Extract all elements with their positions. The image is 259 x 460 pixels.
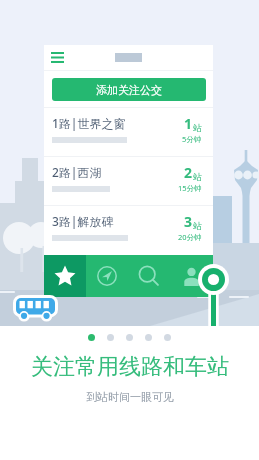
button[interactable]: Page 3 — [126, 334, 133, 341]
staticText: 15分钟 — [178, 183, 202, 193]
staticText: 关注常用线路和车站 — [31, 353, 229, 381]
staticText: 3路|解放碑 — [52, 213, 114, 229]
button[interactable]: 添加关注公交 — [52, 78, 206, 101]
staticText: 站 — [193, 220, 202, 231]
button[interactable]: Search — [128, 255, 170, 297]
button[interactable]: Page 2 — [107, 334, 114, 341]
staticText: 1路|世界之窗 — [52, 115, 126, 131]
button[interactable]: Profile — [170, 255, 212, 297]
staticText: 到站时间一眼可见 — [86, 390, 174, 404]
staticText: 2路|西湖 — [52, 164, 102, 180]
button[interactable]: Menu — [51, 52, 64, 63]
button[interactable]: 2路|西湖 — [44, 156, 213, 205]
staticText: 20分钟 — [178, 232, 202, 242]
button[interactable]: Favorites — [44, 255, 86, 297]
staticText: 站 — [193, 171, 202, 182]
staticText: 添加关注公交 — [96, 83, 162, 97]
button[interactable]: 3路|解放碑 — [44, 205, 213, 254]
staticText: 2 — [184, 163, 193, 182]
button[interactable]: Page 5 — [164, 334, 171, 341]
button[interactable]: Nearby — [86, 255, 128, 297]
staticText: 5分钟 — [182, 134, 202, 144]
button[interactable]: Page 1 — [88, 334, 95, 341]
button[interactable]: Page 4 — [145, 334, 152, 341]
staticText: 1 — [184, 114, 193, 133]
button[interactable]: 1路|世界之窗 — [44, 107, 213, 156]
staticText: 站 — [193, 122, 202, 133]
staticText: 3 — [184, 212, 193, 231]
